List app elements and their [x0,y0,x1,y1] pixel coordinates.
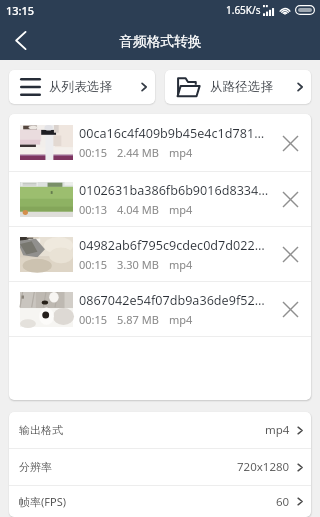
staticText: 5.87 MB [117,312,159,327]
staticText: 00:13 [79,202,108,217]
button[interactable]: Back [0,20,42,60]
staticText: 00:15 [79,145,108,160]
button[interactable]: 04982ab6f795c9cdec0d7d022… [9,227,311,281]
button[interactable]: 0867042e54f07db9a36de9f52… [9,282,311,336]
staticText: 13:15 [6,3,35,18]
button[interactable]: Remove [274,183,306,215]
staticText: 音频格式转换 [119,33,202,50]
button[interactable]: 从列表选择 [9,70,155,104]
staticText: 720x1280 [237,459,290,475]
staticText: 04982ab6f795c9cdec0d7d022… [79,237,265,254]
staticText: 00:15 [79,312,108,327]
staticText: mp4 [169,257,193,272]
staticText: 2.44 MB [117,145,159,160]
button[interactable]: 帧率(FPS) [9,486,311,517]
staticText: mp4 [265,422,290,438]
staticText: 输出格式 [19,423,63,437]
button[interactable]: 输出格式 [9,412,311,448]
staticText: 帧率(FPS) [19,494,67,509]
button[interactable]: Remove [274,238,306,270]
staticText: 0102631ba386fb6b9016d8334… [79,182,269,199]
button[interactable]: 00ca16c4f409b9b45e4c1d781… [9,114,311,171]
button[interactable]: Remove [274,293,306,325]
staticText: 3.30 MB [117,257,159,272]
staticText: 60 [276,494,290,510]
staticText: 1.65K/s [226,3,261,17]
staticText: mp4 [169,202,193,217]
staticText: mp4 [169,145,193,160]
staticText: mp4 [169,312,193,327]
staticText: 从列表选择 [49,79,112,95]
staticText: 从路径选择 [210,79,273,95]
staticText: 分辨率 [19,460,52,474]
button[interactable]: 从路径选择 [165,70,311,104]
staticText: 4.04 MB [117,202,159,217]
button[interactable]: 0102631ba386fb6b9016d8334… [9,172,311,226]
button[interactable]: Remove [274,127,306,159]
staticText: 00ca16c4f409b9b45e4c1d781… [79,125,265,142]
staticText: 0867042e54f07db9a36de9f52… [79,292,265,309]
button[interactable]: 分辨率 [9,449,311,485]
staticText: 00:15 [79,257,108,272]
